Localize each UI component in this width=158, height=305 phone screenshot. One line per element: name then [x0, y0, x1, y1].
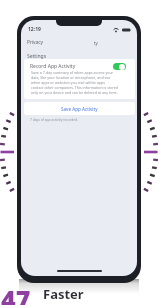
staticText: 12:19	[28, 26, 41, 33]
staticText: ty	[94, 40, 98, 46]
staticText: 7 days of app activity recorded.	[30, 117, 79, 121]
staticText: Settings	[27, 53, 47, 60]
staticText: Faster	[43, 285, 84, 303]
staticText: Save a 7-day summary of when apps access…	[31, 70, 118, 95]
button[interactable]: Record App Activity toggle	[113, 63, 126, 70]
staticText: Record App Activity	[30, 63, 76, 70]
staticText: Privacy	[27, 39, 43, 46]
staticText: 47	[1, 282, 31, 305]
staticText: Save App Activity	[61, 106, 98, 112]
button[interactable]: Save App Activity	[24, 102, 135, 115]
